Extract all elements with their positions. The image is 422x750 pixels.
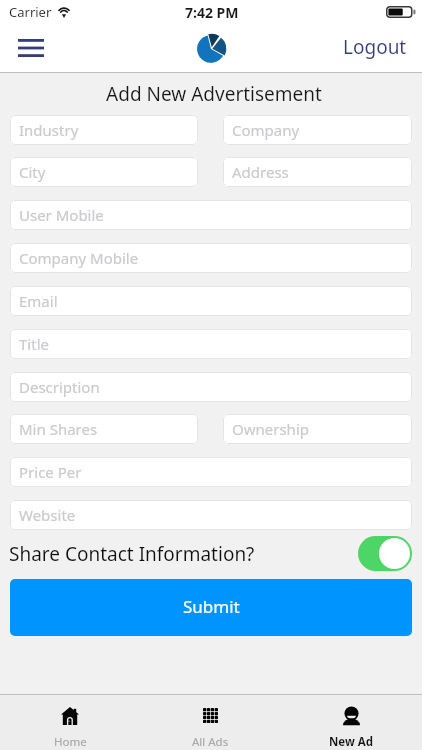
button[interactable]: New Ad [281, 695, 422, 750]
staticText: Email [19, 291, 58, 311]
staticText: City [19, 162, 46, 182]
button[interactable]: Menu [9, 28, 53, 68]
button[interactable]: Share contact information toggle [358, 536, 412, 571]
button[interactable]: Logout [339, 29, 411, 67]
button[interactable]: Email [10, 286, 412, 316]
staticText: Address [232, 162, 289, 182]
staticText: Industry [19, 120, 79, 140]
staticText: Price Per [19, 462, 82, 482]
button[interactable]: Website [10, 500, 412, 530]
staticText: Website [19, 505, 76, 525]
button[interactable]: User Mobile [10, 200, 412, 230]
staticText: Title [19, 334, 49, 354]
staticText: Description [19, 377, 100, 397]
button[interactable]: City [10, 157, 198, 187]
staticText: Ownership [232, 419, 309, 439]
staticText: Min Shares [19, 419, 98, 439]
staticText: Carrier [9, 3, 52, 21]
staticText: Add New Advertisement [3, 81, 422, 107]
button[interactable]: Company Mobile [10, 243, 412, 273]
staticText: Company [232, 120, 300, 140]
button[interactable]: Address [223, 157, 412, 187]
staticText: Share Contact Information? [9, 541, 255, 567]
staticText: New Ad [329, 734, 374, 750]
staticText: All Ads [192, 734, 229, 750]
button[interactable]: Ownership [223, 414, 412, 444]
button[interactable]: Price Per [10, 457, 412, 487]
button[interactable]: Title [10, 329, 412, 359]
staticText: Home [54, 734, 87, 750]
button[interactable]: Industry [10, 115, 198, 145]
staticText: 7:42 PM [185, 3, 239, 22]
staticText: Logout [343, 34, 407, 60]
button[interactable]: Submit [10, 579, 412, 636]
button[interactable]: Home [0, 695, 140, 750]
button[interactable]: Description [10, 372, 412, 402]
staticText: Company Mobile [19, 248, 139, 268]
button[interactable]: Company [223, 115, 412, 145]
button[interactable]: All Ads [140, 695, 281, 750]
button[interactable]: Min Shares [10, 414, 198, 444]
staticText: Submit [183, 595, 240, 618]
staticText: User Mobile [19, 205, 104, 225]
